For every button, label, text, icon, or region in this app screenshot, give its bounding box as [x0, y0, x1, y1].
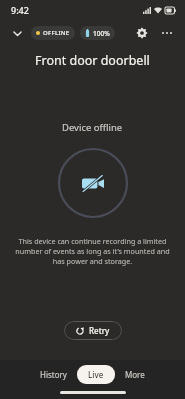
button[interactable]: OFFLINE	[31, 26, 75, 40]
staticText: This device can continue recording a lim…	[14, 236, 171, 266]
button[interactable]: Back	[7, 23, 27, 43]
staticText: Live	[88, 369, 104, 380]
button[interactable]: 100%	[80, 26, 115, 40]
staticText: Device offline	[62, 121, 123, 134]
button[interactable]: Settings	[131, 22, 153, 44]
staticText: Retry	[89, 325, 110, 336]
button[interactable]: More options	[156, 22, 178, 44]
staticText: History	[40, 369, 67, 380]
staticText: More	[125, 369, 145, 380]
button[interactable]: Retry	[64, 321, 122, 340]
staticText: 100%	[93, 29, 110, 38]
button[interactable]: Live	[77, 365, 115, 384]
staticText: 9:42	[11, 4, 29, 16]
button[interactable]: More	[117, 365, 153, 384]
button[interactable]: History	[32, 365, 75, 384]
staticText: OFFLINE	[43, 29, 70, 37]
staticText: Front door doorbell	[35, 52, 150, 69]
